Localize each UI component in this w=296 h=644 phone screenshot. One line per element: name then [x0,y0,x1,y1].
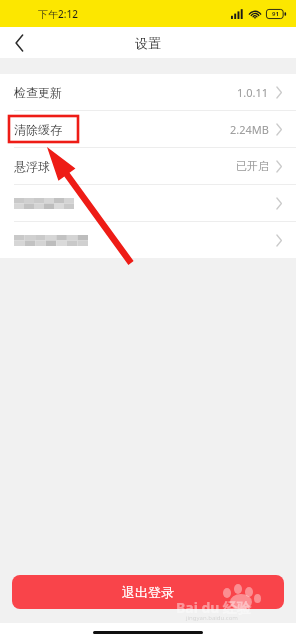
staticText: 下午2:12 [38,7,78,21]
button[interactable]: 退出登录 [12,575,284,609]
staticText: Bai du 经验 [176,598,252,617]
button[interactable]: Back [0,27,38,58]
button[interactable]: 检查更新 [0,74,296,110]
staticText: 1.0.11 [237,85,269,100]
staticText: 2.24MB [230,122,269,137]
staticText: 检查更新 [14,85,62,100]
button[interactable]: 悬浮球 [0,148,296,184]
staticText: 退出登录 [122,584,174,600]
button[interactable]: 清除缓存 [0,111,296,147]
staticText: 已开启 [236,159,269,173]
staticText: 悬浮球 [14,159,50,174]
staticText: jingyan.baidu.com [186,614,238,622]
staticText: 清除缓存 [14,122,62,137]
button[interactable] [0,222,296,258]
staticText: 设置 [135,35,161,51]
staticText: 91 [272,10,279,18]
button[interactable] [0,185,296,221]
